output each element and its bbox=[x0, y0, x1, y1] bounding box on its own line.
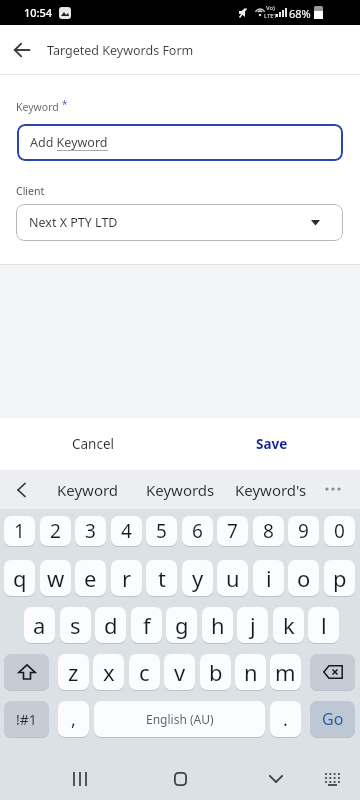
staticText: p bbox=[333, 563, 347, 593]
button[interactable] bbox=[8, 36, 36, 64]
staticText: u bbox=[226, 563, 240, 593]
button[interactable]: 3 bbox=[75, 516, 106, 546]
button[interactable]: v bbox=[164, 654, 195, 690]
staticText: v bbox=[174, 657, 186, 687]
staticText: 68% bbox=[289, 6, 311, 21]
button[interactable]: u bbox=[217, 560, 248, 596]
button[interactable]: x bbox=[93, 654, 124, 690]
staticText: t bbox=[158, 563, 166, 593]
staticText: LTE1 bbox=[264, 12, 278, 20]
staticText: w bbox=[47, 563, 65, 593]
staticText: l bbox=[321, 610, 327, 640]
button[interactable]: c bbox=[129, 654, 160, 690]
button[interactable]: a bbox=[24, 607, 55, 643]
staticText: b bbox=[209, 657, 223, 687]
button[interactable]: 2 bbox=[40, 516, 71, 546]
button[interactable]: 0 bbox=[324, 516, 355, 546]
staticText: g bbox=[175, 610, 189, 640]
button[interactable]: n bbox=[235, 654, 266, 690]
button[interactable]: f bbox=[131, 607, 162, 643]
button[interactable]: 7 bbox=[217, 516, 248, 546]
staticText: d bbox=[104, 610, 118, 640]
button[interactable]: e bbox=[75, 560, 106, 596]
button[interactable]: English (AU) bbox=[94, 701, 265, 737]
button[interactable] bbox=[58, 757, 102, 800]
button[interactable]: o bbox=[288, 560, 319, 596]
staticText: 1 bbox=[14, 518, 25, 544]
button[interactable]: Keyword's bbox=[226, 470, 316, 509]
button[interactable]: l bbox=[308, 607, 339, 643]
staticText: 7 bbox=[227, 518, 238, 544]
button[interactable]: p bbox=[324, 560, 355, 596]
staticText: j bbox=[250, 610, 256, 640]
staticText: 3 bbox=[85, 518, 96, 544]
staticText: f bbox=[143, 610, 151, 640]
staticText: Vo) bbox=[266, 4, 275, 12]
button[interactable]: Save bbox=[212, 424, 332, 464]
staticText: , bbox=[71, 707, 76, 732]
button[interactable]: s bbox=[60, 607, 91, 643]
staticText: Keywords bbox=[146, 480, 215, 500]
staticText: e bbox=[84, 563, 97, 593]
button[interactable]: Keywords bbox=[135, 470, 225, 509]
staticText: Cancel bbox=[72, 435, 115, 453]
button[interactable]: z bbox=[58, 654, 89, 690]
staticText: Next X PTY LTD bbox=[29, 214, 118, 231]
staticText: z bbox=[68, 657, 79, 687]
button[interactable]: Go bbox=[310, 701, 355, 737]
button[interactable]: b bbox=[200, 654, 231, 690]
button[interactable]: Keyword bbox=[43, 470, 133, 509]
button[interactable] bbox=[158, 757, 202, 800]
staticText: . bbox=[283, 707, 288, 732]
button[interactable]: d bbox=[95, 607, 126, 643]
button[interactable]: Next X PTY LTD bbox=[16, 204, 343, 241]
staticText: h bbox=[211, 610, 225, 640]
button[interactable] bbox=[4, 654, 49, 690]
button[interactable]: r bbox=[111, 560, 142, 596]
button[interactable]: i bbox=[253, 560, 284, 596]
staticText: Go bbox=[322, 708, 344, 730]
button[interactable]: 9 bbox=[288, 516, 319, 546]
staticText: k bbox=[283, 610, 295, 640]
staticText: 5 bbox=[156, 518, 167, 544]
staticText: Save bbox=[256, 435, 288, 453]
button[interactable]: g bbox=[166, 607, 197, 643]
staticText: Targeted Keywords Form bbox=[47, 42, 194, 59]
button[interactable]: Cancel bbox=[33, 424, 153, 464]
button[interactable]: , bbox=[58, 701, 89, 737]
staticText: * bbox=[59, 97, 68, 111]
staticText: c bbox=[139, 657, 150, 687]
button[interactable]: 4 bbox=[111, 516, 142, 546]
staticText: Add Keyword bbox=[30, 134, 108, 151]
button[interactable]: 8 bbox=[253, 516, 284, 546]
button[interactable] bbox=[316, 757, 350, 800]
staticText: q bbox=[13, 563, 27, 593]
button[interactable]: k bbox=[273, 607, 304, 643]
button[interactable]: Add Keyword bbox=[17, 124, 343, 161]
button[interactable]: . bbox=[270, 701, 301, 737]
button[interactable]: t bbox=[146, 560, 177, 596]
staticText: English (AU) bbox=[146, 711, 214, 727]
button[interactable]: 1 bbox=[4, 516, 35, 546]
button[interactable]: 6 bbox=[182, 516, 213, 546]
staticText: a bbox=[33, 610, 46, 640]
button[interactable]: j bbox=[237, 607, 268, 643]
staticText: m bbox=[275, 657, 296, 687]
button[interactable]: h bbox=[202, 607, 233, 643]
staticText: 2 bbox=[50, 518, 61, 544]
staticText: i bbox=[266, 563, 272, 593]
button[interactable]: !#1 bbox=[4, 701, 49, 737]
button[interactable] bbox=[310, 654, 355, 690]
staticText: Keyword bbox=[16, 100, 59, 114]
staticText: o bbox=[297, 563, 311, 593]
staticText: Keyword's bbox=[235, 480, 307, 500]
button[interactable]: y bbox=[182, 560, 213, 596]
staticText: y bbox=[192, 563, 204, 593]
button[interactable]: q bbox=[4, 560, 35, 596]
button[interactable]: m bbox=[270, 654, 301, 690]
button[interactable] bbox=[254, 757, 298, 800]
button[interactable]: w bbox=[40, 560, 71, 596]
staticText: x bbox=[103, 657, 115, 687]
staticText: r bbox=[122, 563, 132, 593]
button[interactable]: 5 bbox=[146, 516, 177, 546]
